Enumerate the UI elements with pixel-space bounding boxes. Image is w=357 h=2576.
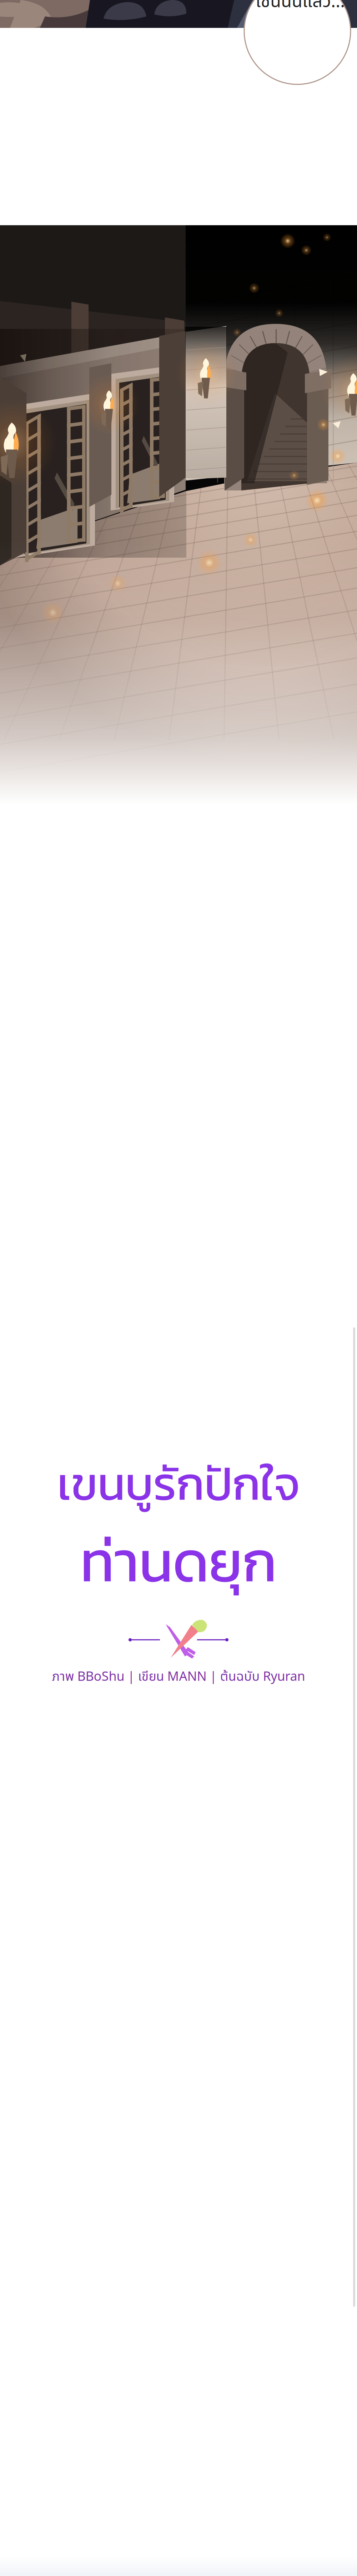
staticText: เขนบูรักปักใจ	[57, 1450, 300, 1518]
staticText: ท่านดยุก	[80, 1519, 277, 1604]
staticText: เช่นนั้นแล้ว...	[256, 0, 345, 15]
staticText: ภาพ BBoShu | เขียน MANN | ต้นฉบับ Ryuran	[52, 1667, 305, 1687]
